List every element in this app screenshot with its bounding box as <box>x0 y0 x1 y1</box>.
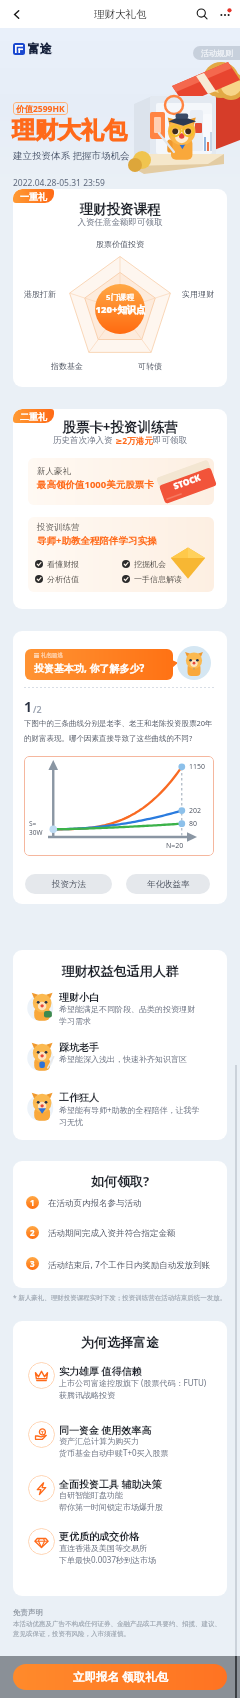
button[interactable]: 投资方法 <box>25 874 112 894</box>
staticText: 希望能满足不同阶段、品类的投资理财 学习需求 <box>59 1004 195 1026</box>
staticText: 免责声明 <box>13 1608 43 1617</box>
staticText: 投资方法 <box>52 879 86 890</box>
staticText: 建立投资体系 把握市场机会 <box>13 149 130 162</box>
button[interactable]: 立即报名 领取礼包 <box>13 1664 227 1690</box>
staticText: 实用理财 <box>182 289 214 299</box>
button[interactable]: Back <box>5 3 27 25</box>
staticText: 富途 <box>28 41 52 56</box>
staticText: 3 <box>30 1258 35 1269</box>
staticText: 即可领取 <box>153 435 187 446</box>
staticText: 活动期间完成入资并符合指定金额 <box>48 1228 176 1239</box>
staticText: STOCK <box>172 472 202 492</box>
staticText: 更优质的成交价格 <box>59 1530 139 1543</box>
staticText: 年化收益率 <box>147 879 190 890</box>
staticText: 资产汇总计算为购买力 货币基金自动申赎T+0买入股票 <box>59 1436 169 1459</box>
staticText: 202 <box>189 806 202 816</box>
staticText: 2 <box>30 1227 35 1238</box>
staticText: 投资基本功, 你了解多少? <box>34 661 145 675</box>
staticText: 挖掘机会 <box>134 559 166 569</box>
button[interactable]: Search <box>192 4 212 24</box>
staticText: /2 <box>33 703 42 715</box>
staticText: 可转债 <box>138 361 162 371</box>
staticText: 分析估值 <box>47 574 79 584</box>
staticText: 在活动页内报名参与活动 <box>48 1198 142 1209</box>
staticText: 立即报名 领取礼包 <box>73 1669 168 1685</box>
staticText: * 新人豪礼、理财投资课程实时下发；投资训练营在活动结束后统一发放。 <box>13 1293 227 1302</box>
staticText: 为何选择富途 <box>13 1334 227 1350</box>
button[interactable]: 年化收益率 <box>126 874 210 894</box>
staticText: ≥2万港元 <box>113 435 153 447</box>
staticText: 自研智能盯盘功能 帮你第一时间锁定市场爆升股 <box>59 1490 163 1512</box>
staticText: 30W <box>29 828 43 837</box>
staticText: 5门课程 <box>106 292 134 303</box>
staticText: 希望能有导师+助教的全程陪伴，让我学 习无忧 <box>59 1104 200 1127</box>
staticText: 同一资金 使用效率高 <box>59 1423 152 1437</box>
staticText: 工作狂人 <box>59 1091 99 1104</box>
staticText: 理财大礼包 <box>94 8 147 21</box>
staticText: 一重礼 <box>20 191 47 202</box>
button[interactable]: More options <box>215 4 235 24</box>
staticText: 如何领取? <box>13 1172 227 1190</box>
staticText: 上市公司富途控股旗下 (股票代码：FUTU) 获腾讯战略投资 <box>59 1377 207 1400</box>
staticText: 1 <box>30 1197 35 1208</box>
staticText: 股票卡+投资训练营 <box>13 418 227 436</box>
staticText: 看懂财报 <box>47 559 79 569</box>
staticText: 理财投资课程 <box>13 201 227 218</box>
staticText: 1 <box>24 697 33 716</box>
staticText: S= <box>29 819 37 828</box>
staticText: 120+知识点 <box>95 303 146 316</box>
staticText: 80 <box>189 819 198 829</box>
staticText: 直连香港及美国等交易所 下单最快0.0037秒到达市场 <box>59 1543 157 1566</box>
button[interactable]: 活动规则 <box>193 46 240 60</box>
staticText: 下图中的三条曲线分别是老李、老王和老陈投资股票20年的财富表现。哪个因素直接导致… <box>24 718 217 743</box>
staticText: 踩坑老手 <box>59 1041 99 1054</box>
staticText: 投资训练营 <box>37 522 80 533</box>
staticText: 历史首次净入资 <box>53 435 113 446</box>
staticText: N=20 <box>166 841 184 851</box>
staticText: 2022.04.28-05.31 23:59 <box>13 177 105 187</box>
staticText: 本活动优惠及广告不构成任何证券、金融产品或工具要约、招揽、建议、意见或保证，投资… <box>13 1620 227 1638</box>
staticText: 全面投资工具 辅助决策 <box>59 1477 162 1491</box>
staticText: 入资任意金额即可领取 <box>13 217 227 228</box>
staticText: 活动规则 <box>201 48 233 58</box>
staticText: 价值2599HK <box>16 103 65 115</box>
staticText: 实力雄厚 值得信赖 <box>59 1364 142 1378</box>
staticText: 港股打新 <box>24 289 56 299</box>
staticText: 1150 <box>189 762 206 772</box>
staticText: 二重礼 <box>20 411 47 422</box>
staticText: 一手信息解读 <box>134 574 182 584</box>
staticText: 活动结束后, 7个工作日内奖励自动发放到账 <box>48 1259 211 1271</box>
staticText: 导师+助教全程陪伴学习实操 <box>37 534 157 547</box>
staticText: 礼包题逃 <box>41 652 63 659</box>
staticText: 最高领价值1000美元股票卡 <box>37 478 154 491</box>
staticText: 理财小白 <box>59 991 99 1004</box>
staticText: 希望能深入浅出，快速补齐知识盲区 <box>59 1054 187 1064</box>
staticText: 指数基金 <box>51 361 83 371</box>
staticText: 理财大礼包 <box>12 116 127 145</box>
staticText: 理财权益包适用人群 <box>13 963 227 979</box>
staticText: 新人豪礼 <box>37 466 71 477</box>
staticText: 股票价值投资 <box>96 239 144 249</box>
